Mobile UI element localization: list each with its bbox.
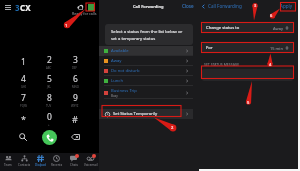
staticText: 1 [65,23,68,28]
button[interactable]: 4 [11,71,36,90]
staticText: 4 [21,73,26,85]
staticText: Away [273,26,283,31]
staticText: TUV [46,104,52,108]
staticText: Call Forwarding [208,3,242,9]
button[interactable]: Apply [280,3,298,9]
staticText: Business Trip [111,88,137,94]
staticText: 15 min [270,46,283,51]
staticText: For [206,45,213,51]
staticText: Chats [70,163,78,167]
button[interactable]: Menu [3,2,13,12]
button[interactable]: 1 [11,52,36,71]
button[interactable]: Status message [202,69,293,81]
staticText: PQRS [20,104,28,108]
button[interactable]: Lunch [104,76,189,86]
staticText: 7 [21,92,26,104]
staticText: WXYZ [71,104,79,108]
staticText: Away [111,58,122,64]
button[interactable]: Business Trip [104,86,189,99]
staticText: Team [4,163,12,167]
staticText: 3 [73,54,78,66]
button[interactable]: 6 [62,71,88,90]
button[interactable]: # [62,109,88,128]
button[interactable]: Chats [65,153,82,168]
staticText: 6 [73,73,78,85]
staticText: 2 [47,54,52,66]
button[interactable]: Voicemail [82,153,99,168]
staticText: SET STATUS MESSAGE [204,62,240,67]
button[interactable]: 9 [62,90,88,109]
button[interactable]: 3 [62,52,88,71]
staticText: 9 [73,92,78,104]
staticText: Select a status from the list below or s… [111,29,183,41]
staticText: Call Forwarding [133,4,164,9]
staticText: Dialpad [35,163,46,167]
staticText: CX [20,2,31,13]
button[interactable]: Search [16,130,30,144]
staticText: Change status to [206,25,240,31]
button[interactable]: Call Forwarding [201,3,242,9]
staticText: MNO [72,85,79,89]
staticText: 3 [254,3,257,8]
staticText: DEF [72,66,78,70]
staticText: Voicemail [84,163,98,167]
staticText: Set Status Temporarily [113,111,158,117]
staticText: Recents [51,163,63,167]
button[interactable]: For [206,43,289,53]
button[interactable]: 8 [36,90,62,109]
button[interactable]: Change status to [206,23,289,33]
button[interactable]: Set Status Temporarily [105,109,189,119]
staticText: 5 [247,100,250,105]
button[interactable]: Call [42,130,57,145]
staticText: Contacts [18,163,31,167]
staticText: 4 [269,62,272,67]
staticText: 0 [47,111,52,123]
staticText: GHI [21,85,27,89]
staticText: * [21,113,26,125]
button[interactable]: Availability status [88,4,95,11]
staticText: Busy [111,94,118,98]
staticText: ABC [46,66,52,70]
button[interactable]: Close [182,3,199,9]
staticText: 2 [171,125,174,130]
staticText: JKL [47,85,51,89]
button[interactable]: Recents [48,153,65,168]
button[interactable]: Contacts [16,153,32,168]
staticText: Do not disturb [111,68,140,74]
staticText: Lunch [111,78,123,84]
staticText: 5 [47,73,52,85]
staticText: 3 [15,2,20,13]
button[interactable]: * [11,109,36,128]
button[interactable]: Away [104,56,189,66]
button[interactable]: 7 [11,90,36,109]
staticText: + [48,123,50,127]
button[interactable]: 2 [36,52,62,71]
button[interactable]: Do not disturb [104,66,189,76]
button[interactable]: 0 [36,109,62,128]
staticText: Ready for calls [72,11,97,16]
button[interactable]: 5 [36,71,62,90]
staticText: 1 [21,56,26,68]
staticText: 8 [47,92,52,104]
staticText: Available [111,48,129,54]
staticText: # [72,113,78,125]
button[interactable]: Dialpad [32,153,48,168]
button[interactable]: Backspace [68,130,82,144]
button[interactable]: Team [0,153,16,168]
button[interactable]: Available [104,46,189,56]
staticText: 6 [270,13,273,18]
